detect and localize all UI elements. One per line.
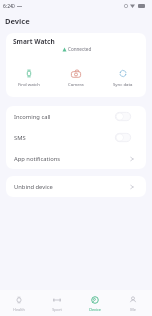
staticText: Camera	[68, 81, 84, 87]
button[interactable]: Me	[114, 290, 152, 312]
staticText: Unbind device	[14, 183, 53, 191]
button[interactable]: Find watch	[6, 69, 52, 87]
staticText: Sport	[52, 307, 62, 312]
staticText: Device	[89, 307, 101, 312]
staticText: Health	[13, 307, 25, 312]
button[interactable]: Device	[76, 290, 114, 312]
staticText: Find watch	[18, 81, 40, 87]
staticText: Smart Watch	[13, 37, 55, 46]
staticText: Incoming call	[14, 113, 51, 121]
staticText: Me	[130, 307, 136, 312]
button[interactable]: Incoming call	[6, 106, 146, 127]
staticText: 6:24	[3, 3, 13, 10]
staticText: Connected	[68, 46, 92, 52]
button[interactable]: Sync data	[99, 69, 146, 87]
button[interactable]: Unbind device	[6, 176, 146, 197]
staticText: Device	[5, 16, 30, 26]
staticText: Sync data	[113, 81, 133, 87]
staticText: App notifications	[14, 155, 60, 163]
button[interactable]: Sport	[38, 290, 76, 312]
staticText: SMS	[14, 134, 26, 142]
button[interactable]: App notifications	[6, 148, 146, 169]
button[interactable]: SMS	[6, 127, 146, 148]
button[interactable]: Health	[0, 290, 38, 312]
button[interactable]: Camera	[52, 69, 99, 87]
